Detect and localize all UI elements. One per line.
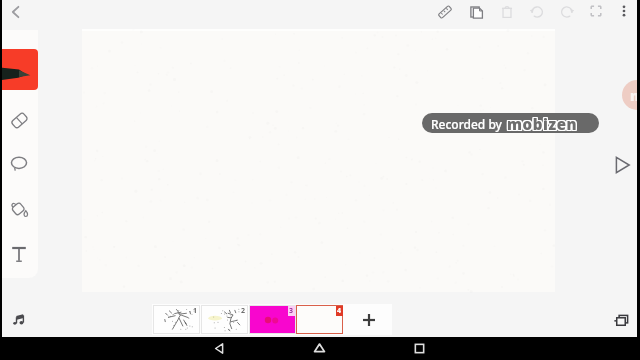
- staticText: mobizen: [508, 114, 579, 133]
- button[interactable]: Play: [612, 155, 632, 175]
- staticText: 2: [241, 306, 246, 316]
- staticText: m: [630, 86, 640, 105]
- staticText: mobizen: [506, 114, 577, 133]
- button[interactable]: [250, 306, 295, 333]
- staticText: mobizen: [506, 113, 577, 133]
- staticText: mobizen: [506, 115, 577, 133]
- button[interactable]: Layers: [613, 312, 630, 329]
- button[interactable]: Eraser: [10, 111, 29, 130]
- button[interactable]: Delete: [498, 3, 516, 21]
- button[interactable]: Fullscreen: [588, 3, 604, 19]
- button[interactable]: Recents: [397, 337, 441, 360]
- staticText: 3: [289, 306, 294, 316]
- button[interactable]: Add frame: [346, 305, 391, 334]
- staticText: 4: [337, 306, 342, 316]
- button[interactable]: Back: [197, 337, 241, 360]
- button[interactable]: Duplicate: [468, 3, 486, 21]
- button[interactable]: Back: [6, 2, 26, 22]
- button[interactable]: [297, 306, 342, 333]
- button[interactable]: Home: [297, 337, 341, 360]
- staticText: Recorded by: [431, 116, 502, 132]
- staticText: mobizen: [507, 113, 578, 133]
- button[interactable]: Text: [9, 244, 29, 264]
- button[interactable]: Undo: [528, 3, 546, 21]
- button[interactable]: Audio: [12, 313, 27, 328]
- button[interactable]: Fill: [9, 198, 30, 219]
- button[interactable]: Pen tool: [0, 49, 38, 90]
- staticText: mobizen: [507, 114, 578, 133]
- staticText: mobizen: [507, 115, 578, 133]
- button[interactable]: More options: [616, 3, 632, 19]
- button[interactable]: Lasso: [10, 154, 28, 172]
- button[interactable]: Ruler: [436, 3, 454, 21]
- staticText: 1: [193, 306, 198, 316]
- staticText: mobizen: [508, 115, 579, 133]
- staticText: mobizen: [508, 113, 579, 133]
- button[interactable]: [202, 306, 247, 333]
- button[interactable]: Redo: [558, 3, 576, 21]
- button[interactable]: [154, 306, 199, 333]
